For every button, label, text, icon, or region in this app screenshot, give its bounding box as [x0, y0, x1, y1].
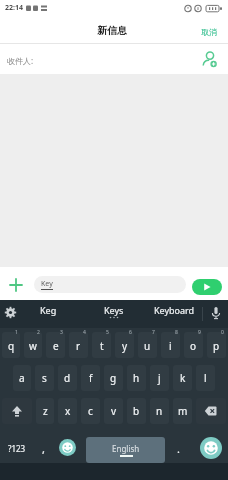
staticText: 22:14 [5, 3, 23, 13]
button[interactable] [8, 277, 24, 293]
staticText: English [112, 443, 140, 454]
staticText: 1 [15, 329, 18, 336]
button[interactable]: c [81, 398, 100, 424]
staticText: k [180, 371, 186, 385]
staticText: q [8, 339, 15, 353]
staticText: 9 [198, 329, 201, 336]
staticText: w [29, 339, 37, 353]
staticText: x [65, 404, 71, 418]
staticText: r [76, 339, 81, 353]
button[interactable]: x [58, 398, 77, 424]
staticText: Keg [40, 304, 57, 316]
button[interactable] [4, 306, 17, 319]
staticText: Keyboard [154, 304, 195, 316]
button[interactable] [210, 306, 222, 321]
button[interactable] [196, 398, 226, 424]
button[interactable]: l [196, 365, 215, 391]
staticText: m [178, 404, 188, 418]
button[interactable]: 收件人: [0, 44, 228, 74]
staticText: Key [41, 279, 53, 289]
button[interactable]: , [32, 435, 54, 461]
staticText: 4 [83, 329, 86, 336]
button[interactable]: z [36, 398, 54, 424]
button[interactable]: s [35, 365, 54, 391]
button[interactable]: u [138, 332, 157, 358]
staticText: j [158, 371, 161, 385]
button[interactable]: f [81, 365, 100, 391]
button[interactable]: Key [34, 276, 186, 293]
button[interactable]: r [69, 332, 88, 358]
staticText: p [213, 339, 220, 353]
button[interactable]: t [92, 332, 111, 358]
staticText: 收件人: [7, 55, 34, 66]
button[interactable]: k [173, 365, 192, 391]
button[interactable] [192, 279, 222, 295]
staticText: 3 [60, 329, 63, 336]
staticText: ?123 [8, 443, 26, 454]
staticText: d [64, 371, 71, 385]
staticText: y [122, 339, 128, 353]
staticText: 0 [221, 329, 224, 336]
staticText: 取消 [201, 27, 217, 37]
button[interactable]: Keys [104, 304, 124, 316]
staticText: a [19, 371, 25, 385]
staticText: g [110, 371, 117, 385]
staticText: 7 [152, 329, 155, 336]
staticText: 新信息 [97, 24, 127, 37]
staticText: u [144, 339, 151, 353]
button[interactable]: . [167, 435, 189, 461]
staticText: 6 [129, 329, 132, 336]
staticText: e [53, 339, 59, 353]
staticText: v [111, 404, 117, 418]
staticText: l [204, 371, 207, 385]
staticText: , [42, 441, 45, 456]
button[interactable]: a [13, 365, 31, 391]
staticText: f [89, 371, 93, 385]
button[interactable]: Keyboard [154, 304, 195, 316]
staticText: Keys [104, 304, 124, 316]
button[interactable]: d [58, 365, 77, 391]
button[interactable]: 取消 [197, 21, 221, 39]
staticText: o [190, 339, 197, 353]
staticText: 5 [106, 329, 109, 336]
button[interactable]: e [46, 332, 65, 358]
staticText: h [133, 371, 140, 385]
button[interactable]: i [161, 332, 180, 358]
button[interactable]: English [86, 437, 165, 463]
staticText: c [88, 404, 93, 418]
button[interactable]: ?123 [0, 435, 34, 461]
button[interactable]: Keg [40, 304, 57, 316]
button[interactable]: j [150, 365, 169, 391]
staticText: 8 [175, 329, 178, 336]
button[interactable] [59, 439, 76, 456]
button[interactable] [2, 398, 32, 424]
button[interactable]: m [173, 398, 192, 424]
button[interactable] [200, 437, 222, 459]
button[interactable]: q [2, 332, 20, 358]
button[interactable]: w [24, 332, 42, 358]
button[interactable]: b [127, 398, 146, 424]
staticText: b [133, 404, 140, 418]
button[interactable]: g [104, 365, 123, 391]
button[interactable]: h [127, 365, 146, 391]
button[interactable]: n [150, 398, 169, 424]
staticText: s [42, 371, 47, 385]
button[interactable]: y [115, 332, 134, 358]
staticText: 2 [37, 329, 40, 336]
staticText: z [43, 404, 48, 418]
staticText: t [100, 339, 104, 353]
staticText: . [177, 441, 180, 456]
button[interactable]: v [104, 398, 123, 424]
staticText: n [156, 404, 163, 418]
button[interactable]: o [184, 332, 203, 358]
staticText: i [169, 339, 172, 353]
button[interactable]: p [207, 332, 226, 358]
